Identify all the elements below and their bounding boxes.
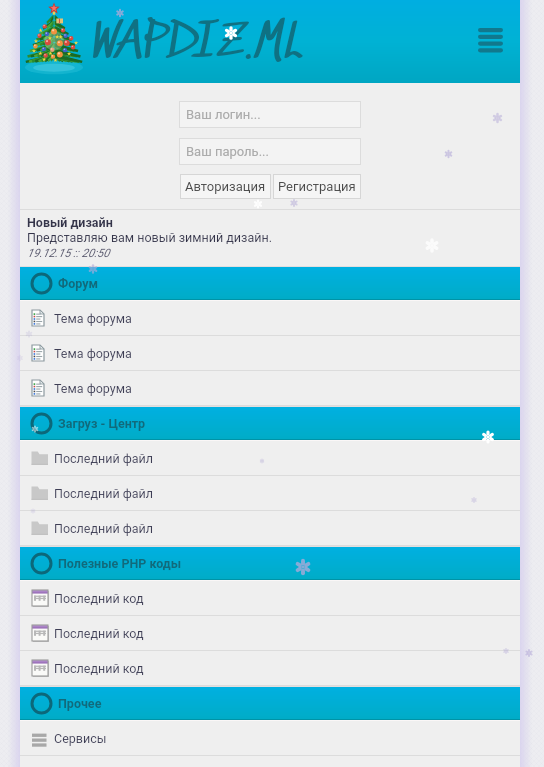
button[interactable]: Menu (468, 19, 512, 63)
staticText: Представляю вам новый зимний дизайн. (27, 230, 272, 245)
staticText: Последний код (54, 661, 144, 676)
staticText: Тема форума (54, 346, 132, 361)
button[interactable]: Загруз - Центр (20, 407, 520, 440)
staticText: Регистрация (278, 179, 356, 194)
staticText: WAPDIZ.ML (92, 16, 304, 73)
button[interactable]: Тема форума (20, 371, 520, 405)
button[interactable]: Последний файл (20, 511, 520, 545)
button[interactable]: Регистрация (273, 174, 361, 199)
button[interactable]: Последний код (20, 616, 520, 650)
staticText: Последний файл (54, 486, 154, 501)
staticText: Форум (58, 276, 99, 291)
staticText: Последний код (54, 591, 144, 606)
button[interactable]: Ваш логин... (179, 101, 361, 128)
button[interactable]: Последний файл (20, 441, 520, 475)
button[interactable]: Полезные PHP коды (20, 547, 520, 580)
button[interactable]: Последний файл (20, 476, 520, 510)
staticText: Ваш логин... (186, 107, 261, 122)
button[interactable]: Тема форума (20, 301, 520, 335)
staticText: Ваш пароль... (186, 144, 269, 159)
button[interactable]: Тема форума (20, 336, 520, 370)
staticText: Последний файл (54, 451, 154, 466)
button[interactable]: Ваш пароль... (179, 138, 361, 165)
button[interactable]: Прочее (20, 687, 520, 720)
staticText: Новый дизайн (27, 215, 113, 230)
staticText: Авторизация (185, 179, 266, 194)
staticText: Последний код (54, 626, 144, 641)
staticText: Прочее (58, 696, 102, 711)
button[interactable]: Последний код (20, 651, 520, 685)
button[interactable]: Последний код (20, 581, 520, 615)
staticText: Тема форума (54, 381, 132, 396)
staticText: Тема форума (54, 311, 132, 326)
button[interactable]: Форум (20, 267, 520, 300)
staticText: Последний файл (54, 521, 154, 536)
staticText: Полезные PHP коды (58, 556, 182, 571)
staticText: Загруз - Центр (58, 416, 146, 431)
button[interactable]: Авторизация (180, 174, 271, 199)
staticText: Сервисы (54, 731, 107, 746)
staticText: 19.12.15 :: 20:50 (27, 246, 110, 259)
button[interactable]: Сервисы (20, 721, 520, 755)
